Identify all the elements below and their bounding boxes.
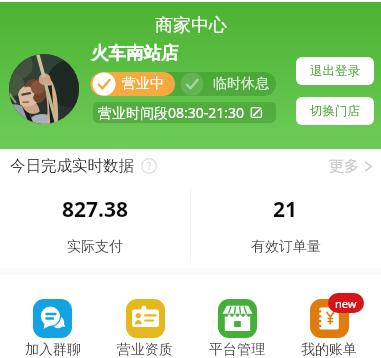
button[interactable]: 21 [190,183,381,268]
staticText: 加入群聊 [25,341,81,358]
staticText: 今日完成实时数据 [10,156,134,176]
button[interactable]: 切换门店 [296,97,374,125]
staticText: ? [147,159,152,173]
staticText: new [335,296,357,311]
button[interactable]: 平台管理 [191,299,283,358]
staticText: 临时休息 [213,75,269,93]
staticText: 商家中心 [155,14,227,37]
staticText: 实际支付 [67,238,123,256]
staticText: 营业时间段08:30-21:30 [98,103,245,122]
button[interactable]: new [283,299,375,358]
button[interactable]: 退出登录 [296,57,374,85]
button[interactable]: 营业时间段08:30-21:30 [93,102,276,123]
staticText: 21 [273,195,298,224]
staticText: 有效订单量 [251,238,321,256]
button[interactable]: 今日完成实时数据 [10,149,374,183]
staticText: 火车南站店 [91,42,179,64]
staticText: 退出登录 [310,63,360,79]
button[interactable]: 营业资质 [99,299,191,358]
staticText: 切换门店 [310,103,360,119]
button[interactable]: 营业中 [90,72,175,96]
button[interactable]: 临时休息 [175,72,276,96]
button[interactable]: 加入群聊 [6,299,99,358]
staticText: 827.38 [62,195,128,224]
staticText: 平台管理 [209,341,265,358]
staticText: 营业资质 [117,341,173,358]
staticText: 我的账单 [301,341,357,358]
other: Edit business hours [250,106,263,119]
button[interactable]: 827.38 [0,183,190,268]
staticText: 更多 [329,157,359,176]
staticText: 营业中 [122,75,164,93]
